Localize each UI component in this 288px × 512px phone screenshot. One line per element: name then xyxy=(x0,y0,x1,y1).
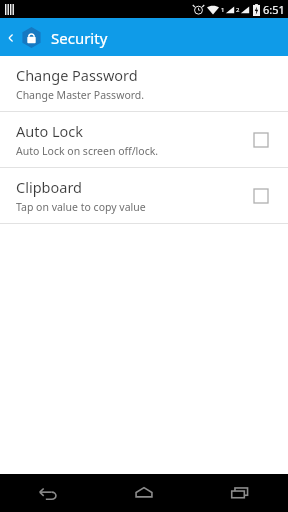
staticText: 6:51 xyxy=(263,2,285,17)
button[interactable]: Auto Lock toggle xyxy=(248,127,274,153)
staticText: Tap on value to copy value xyxy=(16,200,146,214)
button[interactable]: Clipboard toggle xyxy=(248,183,274,209)
button[interactable]: Home xyxy=(96,474,192,512)
staticText: Auto Lock xyxy=(16,121,84,141)
staticText: Change Master Password. xyxy=(16,88,145,102)
staticText: 2 xyxy=(236,6,240,14)
button[interactable]: Recent apps xyxy=(192,474,288,512)
button[interactable]: Auto Lock xyxy=(0,112,288,167)
button[interactable]: Clipboard xyxy=(0,168,288,223)
staticText: Auto Lock on screen off/lock. xyxy=(16,144,159,158)
staticText: Change Password xyxy=(16,65,138,85)
staticText: Clipboard xyxy=(16,177,83,197)
button[interactable]: Navigate up xyxy=(2,29,20,47)
button[interactable]: Back xyxy=(0,474,96,512)
staticText: 1 xyxy=(221,6,225,14)
button[interactable]: Change Password xyxy=(0,56,288,111)
staticText: Security xyxy=(51,28,108,48)
